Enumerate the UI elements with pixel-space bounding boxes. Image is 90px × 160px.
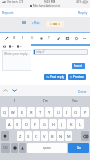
button[interactable]: Y: [45, 107, 53, 117]
button[interactable]: K: [67, 119, 75, 129]
button[interactable]: F: [31, 119, 39, 129]
staticText: Report: [2, 10, 14, 15]
staticText: space: [43, 146, 51, 150]
button[interactable]: Image: [64, 35, 70, 41]
button[interactable]: Link: [55, 35, 61, 41]
staticText: Reply: [78, 10, 88, 15]
staticText: Verizon: [7, 0, 18, 4]
button[interactable]: T: [36, 107, 44, 117]
button[interactable]: Italic: [20, 35, 26, 41]
button[interactable]: Underline: [29, 35, 35, 41]
staticText: B: [51, 134, 54, 139]
button[interactable]: Next field: [11, 87, 18, 94]
button[interactable]: 123: [1, 143, 10, 153]
button[interactable]: Done: [77, 88, 88, 94]
button[interactable]: Dictate: [19, 143, 26, 153]
button[interactable]: +Plus: [31, 21, 41, 25]
staticText: +Plus: [32, 21, 40, 25]
button[interactable]: Z: [17, 131, 24, 141]
button[interactable]: Font size: [46, 35, 52, 41]
staticText: M: [67, 134, 71, 139]
staticText: Insert: [74, 64, 83, 68]
button[interactable]: Previous field: [2, 87, 9, 94]
button[interactable]: You: [60, 96, 90, 106]
button[interactable]: Camera: [1, 43, 7, 49]
button[interactable]: V: [41, 131, 48, 141]
button[interactable]: Text color: [38, 35, 44, 41]
staticText: Z: [19, 134, 22, 139]
button[interactable]: Report: [1, 9, 15, 16]
staticText: I: [66, 110, 68, 115]
button[interactable]: I: [63, 107, 71, 117]
staticText: T: [39, 110, 42, 115]
button[interactable]: M: [65, 131, 72, 141]
button[interactable]: O: [72, 107, 80, 117]
staticText: L: [79, 122, 82, 127]
button[interactable]: Post reply: [44, 74, 66, 80]
button[interactable]: X: [25, 131, 32, 141]
button[interactable]: Alignment: [16, 43, 23, 49]
staticText: LTE: [19, 0, 24, 4]
button[interactable]: space: [27, 143, 67, 153]
staticText: O: [74, 110, 78, 115]
button[interactable]: More: [81, 35, 87, 41]
button[interactable]: Q: [1, 107, 8, 117]
staticText: Go: [77, 146, 81, 150]
staticText: http://: [36, 50, 45, 54]
staticText: P: [84, 110, 87, 115]
button[interactable]: Bold: [11, 35, 17, 41]
staticText: 123: [3, 146, 8, 150]
button[interactable]: I: [0, 96, 30, 106]
button[interactable]: R: [27, 107, 35, 117]
button[interactable]: B: [49, 131, 56, 141]
staticText: E: [21, 110, 24, 115]
button[interactable]: Preview: [68, 74, 86, 80]
staticText: Q: [3, 110, 7, 115]
staticText: H: [52, 122, 55, 127]
staticText: S: [16, 122, 19, 127]
button[interactable]: P: [81, 107, 89, 117]
staticText: Preview: [73, 75, 84, 79]
staticText: B: [13, 36, 16, 40]
button[interactable]: L: [76, 119, 84, 129]
button[interactable]: A: [6, 119, 13, 129]
button[interactable]: Insert: [72, 63, 85, 69]
staticText: U: [31, 36, 34, 40]
staticText: Post reply: [50, 75, 64, 79]
button[interactable]: D: [22, 119, 30, 129]
staticText: K: [70, 122, 73, 127]
button[interactable]: Draw: [3, 35, 9, 41]
staticText: MechanicAdvice.net: [33, 4, 61, 8]
button[interactable]: U: [54, 107, 62, 117]
button[interactable]: H: [49, 119, 57, 129]
staticText: I: [22, 36, 24, 40]
button[interactable]: S: [14, 119, 21, 129]
button[interactable]: Write your reply...: [2, 50, 88, 71]
button[interactable]: Go: [68, 143, 89, 153]
staticText: N: [59, 134, 63, 139]
staticText: Write your reply...: [4, 52, 30, 56]
button[interactable]: W: [9, 107, 17, 117]
staticText: Done: [78, 89, 87, 93]
staticText: 9:03 PM: [44, 0, 56, 4]
staticText: R: [30, 110, 33, 115]
staticText: F: [34, 122, 37, 127]
button[interactable]: E: [18, 107, 26, 117]
button[interactable]: Shift: [1, 131, 9, 141]
button[interactable]: Text style: [8, 43, 15, 49]
button[interactable]: Backspace: [81, 131, 89, 141]
button[interactable]: Reply: [77, 9, 89, 16]
button[interactable]: N: [57, 131, 64, 141]
button[interactable]: I'm: [30, 96, 60, 106]
staticText: A: [8, 122, 11, 127]
button[interactable]: Emoji: [73, 35, 79, 41]
staticText: Y: [48, 110, 51, 115]
staticText: V: [43, 134, 46, 139]
staticText: D: [25, 122, 28, 127]
button[interactable]: G: [40, 119, 48, 129]
staticText: U: [57, 110, 60, 115]
button[interactable]: C: [33, 131, 40, 141]
button[interactable]: Emoji: [11, 143, 18, 153]
button[interactable]: J: [58, 119, 66, 129]
button[interactable]: http://: [33, 49, 88, 55]
